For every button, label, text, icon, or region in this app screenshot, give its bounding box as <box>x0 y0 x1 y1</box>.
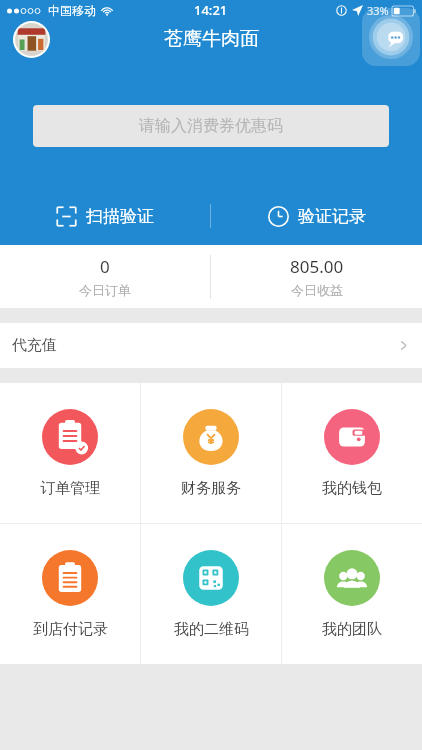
staticText: 中国移动 <box>48 3 96 18</box>
staticText: 今日收益 <box>291 282 343 298</box>
staticText: 财务服务 <box>181 479 241 498</box>
staticText: 请输入消费券优惠码 <box>139 116 283 136</box>
staticText: 33% <box>367 3 389 18</box>
button[interactable]: 我的二维码 <box>141 524 281 664</box>
staticText: 扫描验证 <box>86 206 154 227</box>
button[interactable]: 扫描验证 <box>0 195 210 237</box>
staticText: 到店付记录 <box>33 620 108 639</box>
staticText: 我的团队 <box>322 620 382 639</box>
staticText: 805.00 <box>290 255 344 278</box>
button[interactable]: 验证记录 <box>211 195 422 237</box>
button[interactable]: 请输入消费券优惠码 <box>33 105 389 147</box>
staticText: 验证记录 <box>298 206 366 227</box>
button[interactable]: 订单管理 <box>0 383 140 523</box>
button[interactable]: 我的钱包 <box>282 383 422 523</box>
button[interactable]: 代充值 <box>0 323 422 368</box>
staticText: 14:21 <box>194 1 228 19</box>
staticText: 我的二维码 <box>174 620 249 639</box>
button[interactable]: 到店付记录 <box>0 524 140 664</box>
button[interactable]: 805.00 <box>211 245 422 308</box>
staticText: 今日订单 <box>79 282 131 298</box>
staticText: 我的钱包 <box>322 479 382 498</box>
button[interactable]: 我的团队 <box>282 524 422 664</box>
button[interactable]: 财务服务 <box>141 383 281 523</box>
staticText: 代充值 <box>12 336 57 355</box>
button[interactable]: Store avatar <box>13 21 50 58</box>
staticText: 订单管理 <box>40 479 100 498</box>
staticText: 0 <box>100 255 110 278</box>
button[interactable]: 0 <box>0 245 210 308</box>
staticText: 苍鹰牛肉面 <box>164 27 259 51</box>
button[interactable]: Assistive touch <box>362 8 420 66</box>
